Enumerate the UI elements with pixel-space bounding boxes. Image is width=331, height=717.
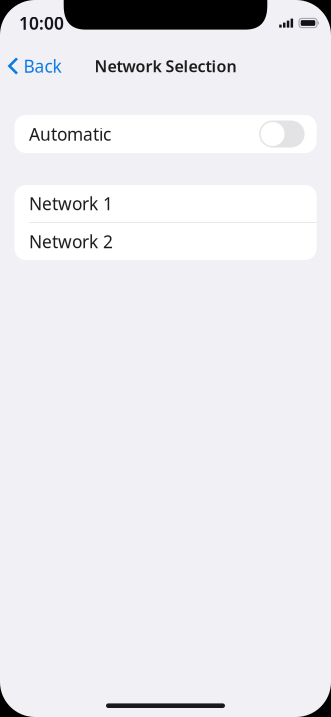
staticText: 10:00 xyxy=(19,11,64,34)
button[interactable]: Network 2 xyxy=(14,223,317,260)
staticText: Back xyxy=(23,54,61,77)
staticText: Automatic xyxy=(29,122,111,145)
staticText: Network 2 xyxy=(29,230,113,253)
staticText: Network Selection xyxy=(94,55,236,77)
button[interactable]: Network 1 xyxy=(14,185,317,222)
button[interactable]: Back xyxy=(0,46,69,86)
button[interactable]: Automatic xyxy=(14,115,317,153)
staticText: Network 1 xyxy=(29,192,113,215)
